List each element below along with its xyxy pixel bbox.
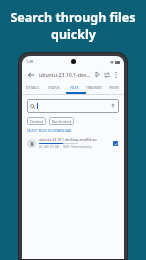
- staticText: 4.5 GB / 4.5 GB · 100% · Normal priority: [39, 145, 92, 149]
- button[interactable]: ubuntu-23.10.1-desktop-amd64.iso: [22, 135, 124, 151]
- button[interactable]: TRACKERS: [84, 82, 104, 92]
- staticText: ubuntu-23.10.1-desktop-amd64.iso: [39, 137, 97, 142]
- button[interactable]: Voice search: [110, 103, 116, 109]
- button[interactable]: PEERS: [104, 82, 124, 92]
- button[interactable]: DETAILS: [22, 82, 43, 92]
- button[interactable]: Select file: [112, 140, 119, 147]
- button[interactable]: Share: [102, 70, 111, 79]
- button[interactable]: FILES: [64, 82, 84, 92]
- button[interactable]: More options: [111, 70, 120, 79]
- staticText: Search through files: [10, 9, 136, 26]
- staticText: ubuntu-23.10.1-des…: [39, 71, 93, 78]
- staticText: TRACKERS: [86, 85, 102, 89]
- button[interactable]: Finished: [27, 117, 46, 125]
- button[interactable]: Start: [93, 70, 102, 79]
- staticText: Not finished: [52, 119, 71, 123]
- staticText: SELECT FILES TO DOWNLOAD: [27, 129, 72, 133]
- staticText: PEERS: [109, 85, 119, 89]
- staticText: STATUS: [48, 85, 60, 89]
- button[interactable]: STATUS: [43, 82, 64, 92]
- staticText: quickly: [51, 26, 96, 43]
- button[interactable]: Back: [26, 70, 36, 80]
- staticText: DETAILS: [26, 85, 39, 89]
- button[interactable]: Voice search: [27, 99, 119, 113]
- button[interactable]: Not finished: [49, 117, 74, 125]
- staticText: Finished: [30, 119, 43, 123]
- staticText: 1:38: [26, 59, 34, 64]
- staticText: FILES: [70, 85, 79, 89]
